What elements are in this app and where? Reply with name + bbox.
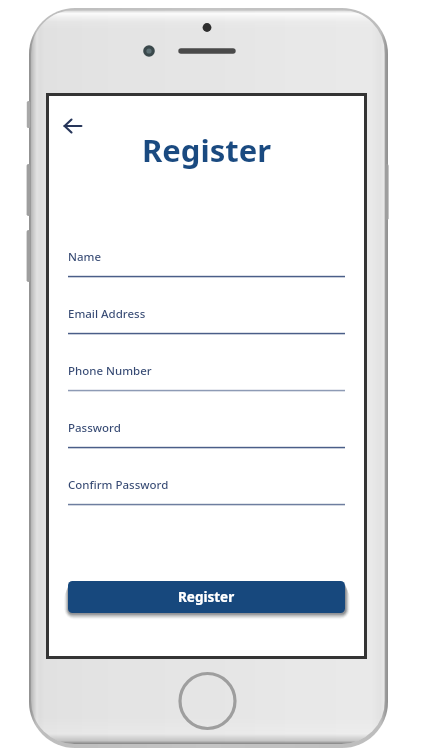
staticText: Email Address [68, 306, 146, 322]
button[interactable]: Email Address [68, 306, 345, 334]
staticText: Confirm Password [68, 477, 169, 493]
staticText: Password [68, 420, 121, 436]
button[interactable]: Phone Number [68, 363, 345, 391]
button[interactable]: Back [52, 108, 88, 144]
staticText: Name [68, 249, 101, 265]
button[interactable]: Confirm Password [68, 477, 345, 505]
staticText: Register [142, 129, 272, 171]
button[interactable]: Register [68, 581, 345, 613]
staticText: Phone Number [68, 363, 152, 379]
staticText: Register [178, 588, 235, 606]
button[interactable]: Name [68, 249, 345, 277]
button[interactable]: Password [68, 420, 345, 448]
